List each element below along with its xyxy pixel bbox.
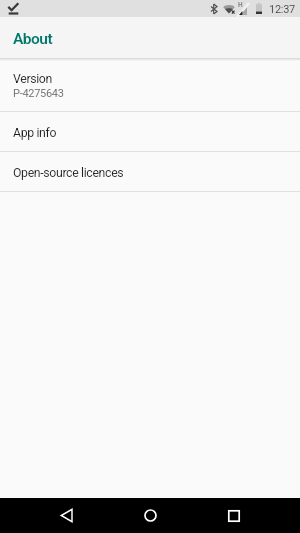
staticText: 12:37 bbox=[269, 3, 295, 16]
button[interactable]: Home bbox=[133, 498, 168, 533]
button[interactable]: Version bbox=[0, 60, 300, 111]
staticText: Version bbox=[13, 72, 52, 86]
button[interactable]: Open-source licences bbox=[0, 152, 300, 191]
button[interactable]: Back bbox=[49, 498, 84, 533]
staticText: Open-source licences bbox=[13, 166, 124, 180]
staticText: App info bbox=[13, 126, 57, 140]
button[interactable]: App info bbox=[0, 112, 300, 151]
staticText: About bbox=[13, 30, 53, 48]
staticText: H bbox=[238, 1, 243, 9]
button[interactable]: Recent apps bbox=[216, 498, 251, 533]
staticText: P-4275643 bbox=[13, 87, 64, 100]
